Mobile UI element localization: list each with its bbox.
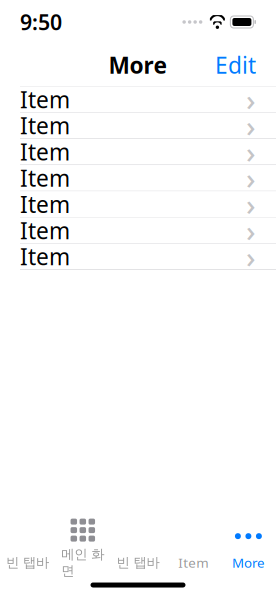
- staticText: 9:50: [20, 8, 62, 36]
- button[interactable]: 빈 탭바: [110, 523, 166, 573]
- staticText: Item: [20, 215, 70, 245]
- staticText: More: [232, 554, 265, 571]
- staticText: ›: [246, 185, 256, 224]
- staticText: Item: [20, 189, 70, 219]
- staticText: ›: [246, 106, 256, 145]
- staticText: 메인 화면: [61, 546, 104, 579]
- staticText: ›: [246, 80, 256, 119]
- button[interactable]: More: [221, 523, 276, 573]
- button[interactable]: Item: [0, 191, 276, 217]
- staticText: 빈 탭바: [6, 554, 49, 571]
- button[interactable]: Item: [0, 86, 276, 113]
- staticText: Item: [178, 554, 208, 571]
- staticText: ›: [246, 211, 256, 250]
- staticText: ›: [246, 158, 256, 197]
- staticText: 빈 탭바: [116, 554, 159, 571]
- button[interactable]: Item: [0, 217, 276, 244]
- staticText: Edit: [215, 50, 256, 80]
- staticText: ›: [246, 132, 256, 171]
- button[interactable]: 빈 탭바: [0, 523, 55, 573]
- staticText: Item: [20, 137, 70, 167]
- button[interactable]: Item: [0, 113, 276, 139]
- staticText: Item: [20, 241, 70, 272]
- staticText: Item: [20, 110, 70, 141]
- button[interactable]: Item: [0, 244, 276, 270]
- staticText: More: [108, 50, 167, 80]
- staticText: Item: [20, 163, 70, 193]
- button[interactable]: Edit: [207, 44, 264, 86]
- button[interactable]: Item: [0, 165, 276, 191]
- staticText: Item: [20, 84, 70, 114]
- button[interactable]: Item: [166, 523, 221, 573]
- button[interactable]: 메인 화면: [55, 523, 110, 573]
- staticText: ›: [246, 237, 256, 276]
- button[interactable]: Item: [0, 139, 276, 165]
